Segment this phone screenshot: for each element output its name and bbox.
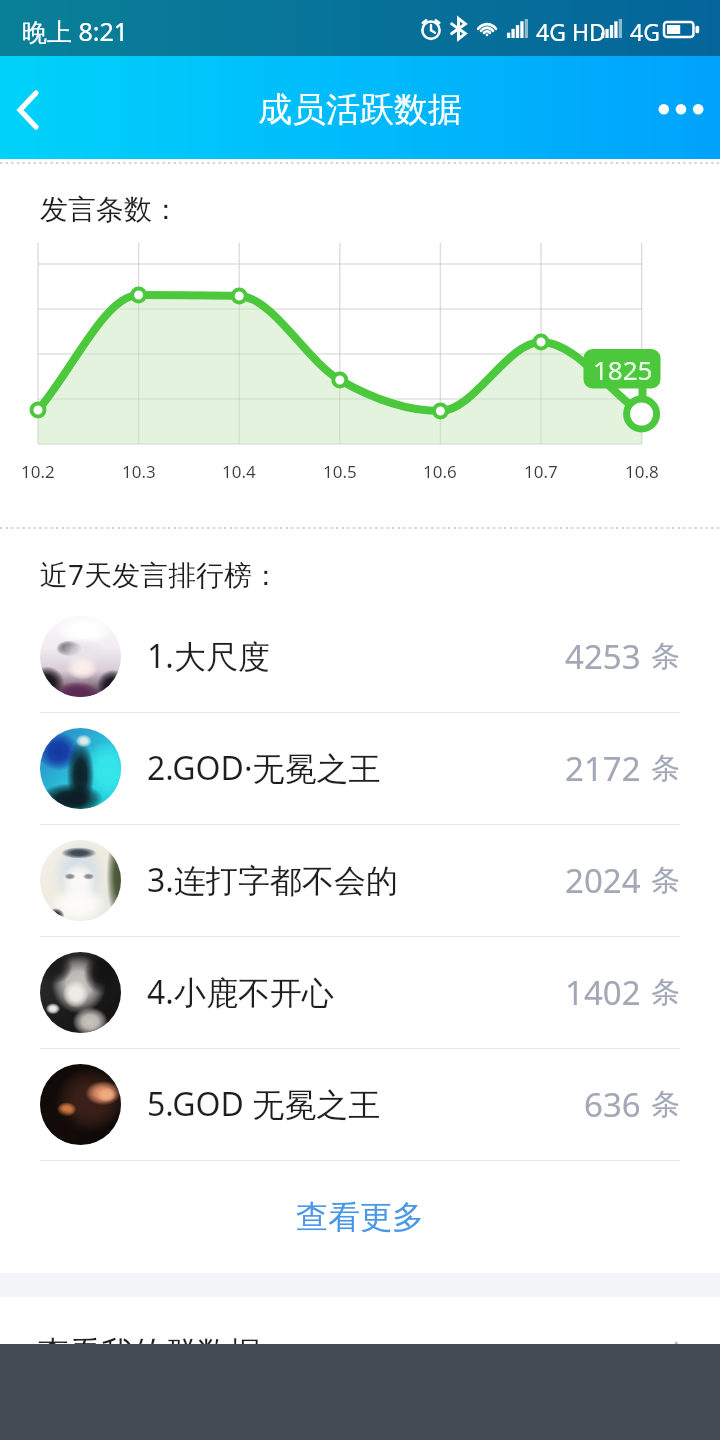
staticText: 查看更多 (296, 1197, 424, 1237)
staticText: 10.5 (323, 460, 357, 483)
button[interactable]: 4.小鹿不开心 (0, 936, 720, 1048)
staticText: 条 (651, 1086, 680, 1123)
button[interactable]: More options (642, 64, 720, 152)
staticText: 10.4 (222, 460, 256, 483)
staticText: 4.小鹿不开心 (147, 970, 334, 1014)
button[interactable]: 查看更多 (0, 1161, 720, 1273)
staticText: 10.3 (122, 460, 156, 483)
button[interactable]: 1.大尺度 (0, 600, 720, 712)
button[interactable]: 5.GOD 无冕之王 (0, 1048, 720, 1160)
staticText: 1825 (593, 352, 653, 387)
staticText: 10.8 (625, 460, 659, 483)
staticText: 4253 (565, 634, 641, 679)
staticText: 近7天发言排行榜： (40, 555, 281, 593)
staticText: 4G HD (536, 16, 606, 47)
staticText: 条 (651, 974, 680, 1011)
staticText: 10.6 (423, 460, 457, 483)
staticText: 10.2 (21, 460, 55, 483)
staticText: 2172 (565, 746, 641, 791)
staticText: 4G (630, 16, 660, 47)
staticText: 5.GOD 无冕之王 (147, 1082, 381, 1126)
staticText: 条 (651, 638, 680, 675)
staticText: 3.连打字都不会的 (147, 858, 398, 902)
staticText: 1402 (565, 970, 641, 1015)
staticText: 条 (651, 862, 680, 899)
staticText: 晚上 8:21 (22, 14, 129, 48)
button[interactable]: Back (0, 64, 66, 152)
button[interactable]: 查看我的群数据 (0, 1297, 720, 1409)
button[interactable]: 2.GOD·无冕之王 (0, 712, 720, 824)
staticText: 636 (584, 1082, 641, 1127)
staticText: 2024 (565, 858, 641, 903)
staticText: 成员活跃数据 (258, 88, 462, 131)
button[interactable]: 3.连打字都不会的 (0, 824, 720, 936)
staticText: 条 (651, 750, 680, 787)
staticText: 查看我的群数据 (37, 1333, 261, 1373)
staticText: 10.7 (524, 460, 558, 483)
staticText: 发言条数： (40, 192, 180, 227)
staticText: 2.GOD·无冕之王 (147, 746, 381, 790)
staticText: 1.大尺度 (147, 634, 270, 678)
